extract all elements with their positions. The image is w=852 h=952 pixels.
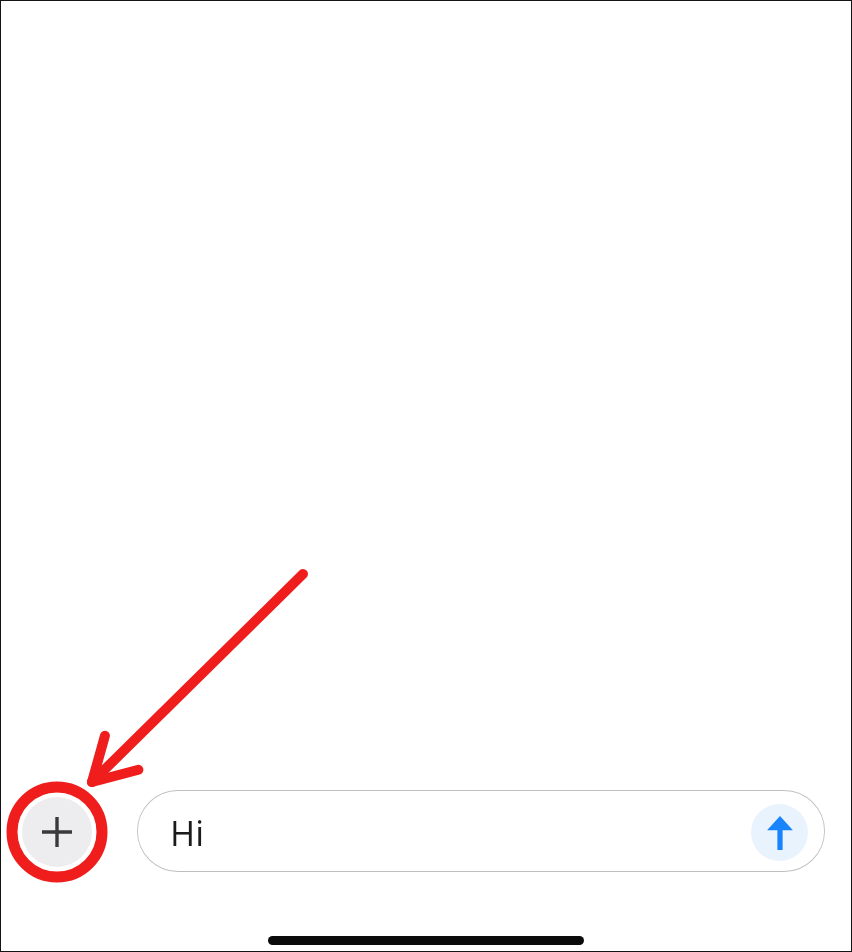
button[interactable] [137, 790, 825, 872]
button[interactable]: Add [22, 797, 92, 867]
staticText: Hi [170, 810, 204, 856]
button[interactable]: Send [751, 804, 808, 861]
